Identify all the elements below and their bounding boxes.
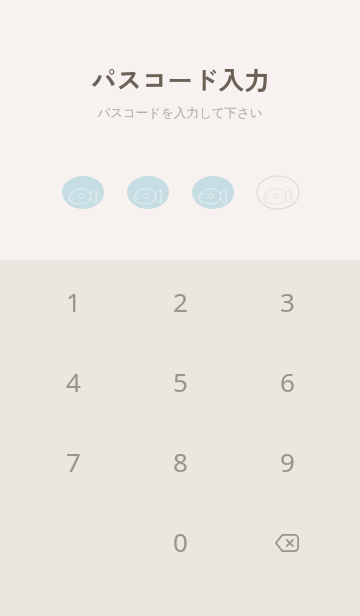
button[interactable]: 1 <box>20 261 127 341</box>
staticText: 8 <box>173 444 188 479</box>
staticText: パスコード入力 <box>90 60 270 97</box>
button[interactable]: 8 <box>127 421 234 501</box>
staticText: 7 <box>66 444 81 479</box>
button[interactable]: 0 <box>127 501 234 581</box>
staticText: 1 <box>66 284 81 319</box>
staticText: 0 <box>173 524 188 559</box>
staticText: 5 <box>173 364 188 399</box>
button[interactable]: Delete <box>234 501 341 581</box>
button[interactable]: 6 <box>234 341 341 421</box>
button[interactable]: 3 <box>234 261 341 341</box>
other: Delete <box>264 517 312 565</box>
staticText: 3 <box>280 284 295 319</box>
button[interactable]: 9 <box>234 421 341 501</box>
staticText: 4 <box>66 364 81 399</box>
staticText: 2 <box>173 284 188 319</box>
staticText: パスコードを入力して下さい <box>97 105 263 121</box>
button[interactable]: 2 <box>127 261 234 341</box>
button[interactable]: 5 <box>127 341 234 421</box>
staticText: 9 <box>280 444 295 479</box>
staticText: 6 <box>280 364 295 399</box>
button[interactable]: 4 <box>20 341 127 421</box>
button[interactable]: 7 <box>20 421 127 501</box>
